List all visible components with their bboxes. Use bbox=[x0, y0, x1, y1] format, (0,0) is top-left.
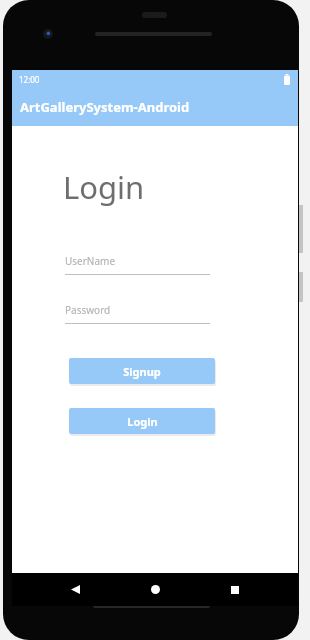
button[interactable]: Login bbox=[69, 408, 215, 434]
staticText: 12:00 bbox=[19, 74, 40, 85]
staticText: Signup bbox=[123, 364, 161, 379]
button[interactable]: Signup bbox=[69, 358, 215, 384]
button[interactable]: UserName bbox=[65, 254, 210, 275]
staticText: ArtGallerySystem-Android bbox=[20, 98, 190, 116]
staticText: Login bbox=[63, 166, 145, 208]
button[interactable]: Recent apps bbox=[218, 573, 251, 606]
staticText: UserName bbox=[65, 254, 116, 268]
button[interactable]: Back bbox=[59, 573, 92, 606]
staticText: Login bbox=[127, 414, 158, 429]
staticText: Password bbox=[65, 303, 111, 317]
button[interactable]: Home bbox=[139, 573, 172, 606]
button[interactable]: Password bbox=[65, 303, 210, 324]
